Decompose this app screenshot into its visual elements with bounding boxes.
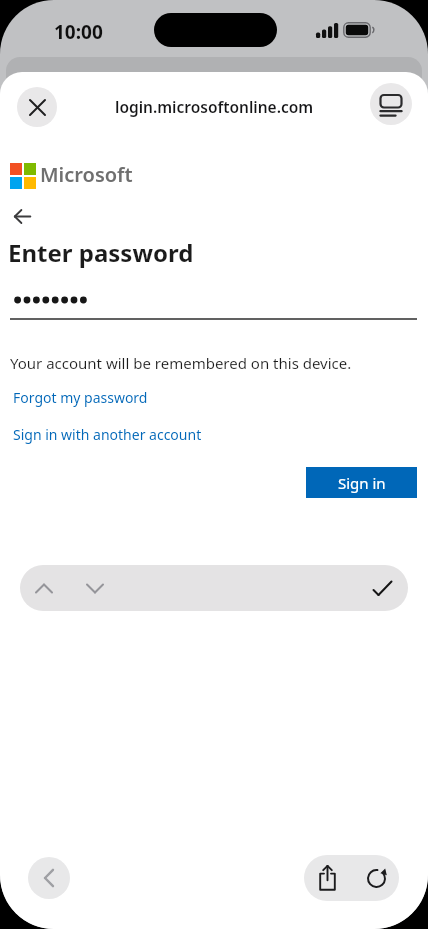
- staticText: Microsoft: [40, 161, 133, 188]
- button[interactable]: [361, 862, 393, 894]
- button[interactable]: [366, 572, 398, 604]
- staticText: 10:00: [54, 19, 103, 45]
- button[interactable]: [6, 200, 38, 232]
- button[interactable]: [17, 87, 57, 127]
- button[interactable]: login.microsoftonline.com: [115, 96, 314, 117]
- button[interactable]: [311, 862, 343, 894]
- button[interactable]: Forgot my password: [13, 388, 148, 407]
- staticText: Sign in: [338, 473, 386, 493]
- button[interactable]: Sign in with another account: [13, 425, 202, 444]
- button[interactable]: [28, 572, 60, 604]
- button[interactable]: [28, 857, 70, 899]
- button[interactable]: [370, 83, 412, 125]
- button[interactable]: Sign in: [306, 467, 417, 498]
- staticText: Your account will be remembered on this …: [10, 353, 352, 373]
- staticText: Enter password: [8, 236, 194, 269]
- button[interactable]: [79, 572, 111, 604]
